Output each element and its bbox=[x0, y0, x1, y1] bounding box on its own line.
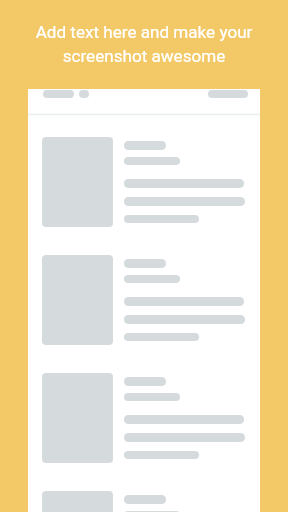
button[interactable] bbox=[28, 367, 260, 485]
button[interactable] bbox=[28, 249, 260, 367]
button[interactable]: Action bbox=[202, 89, 248, 101]
staticText: Add text here and make your screenshot a… bbox=[16, 22, 272, 66]
button[interactable]: Title bbox=[36, 89, 89, 101]
button[interactable] bbox=[28, 131, 260, 249]
button[interactable] bbox=[28, 485, 260, 512]
